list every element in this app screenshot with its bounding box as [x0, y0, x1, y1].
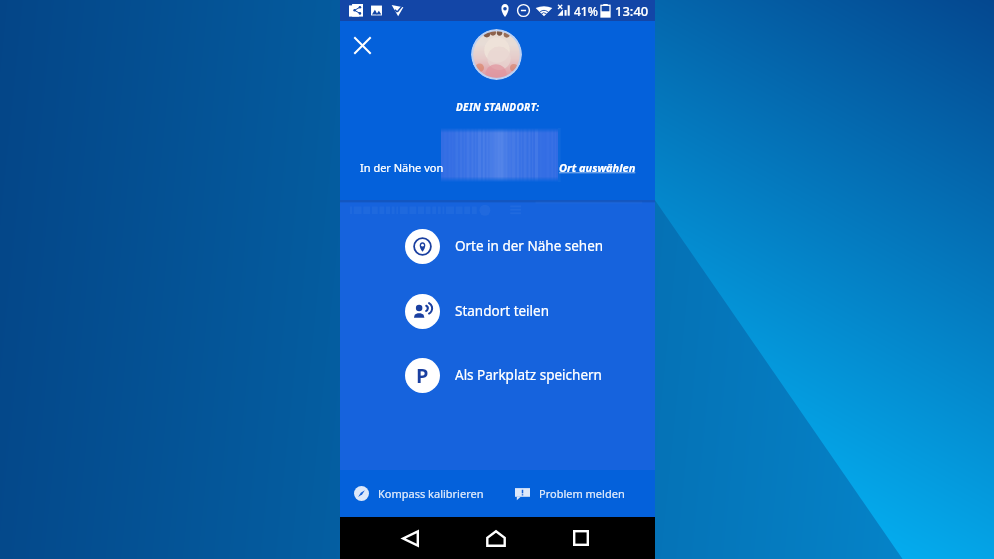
staticText: Orte in der Nähe sehen: [455, 237, 604, 255]
staticText: Kompass kalibrieren: [378, 486, 484, 501]
button[interactable]: Kompass kalibrieren: [354, 480, 484, 507]
staticText: DEIN STANDORT:: [456, 100, 540, 114]
button[interactable]: P: [340, 351, 655, 399]
staticText: Als Parkplatz speichern: [455, 366, 602, 384]
button[interactable]: Startbildschirm: [477, 519, 515, 557]
button[interactable]: Problem melden: [515, 480, 625, 507]
staticText: Problem melden: [539, 486, 625, 501]
staticText: Ort auswählen: [559, 160, 636, 175]
button[interactable]: Schließen: [348, 31, 376, 59]
button[interactable]: Zurück: [391, 519, 429, 557]
button[interactable]: Profil: [471, 29, 522, 80]
button[interactable]: Orte in der Nähe sehen: [340, 222, 655, 270]
staticText: 41%: [574, 3, 598, 19]
staticText: In der Nähe von: [360, 160, 444, 175]
button[interactable]: Übersicht: [562, 519, 600, 557]
button[interactable]: Ort auswählen: [559, 160, 636, 175]
staticText: P: [416, 362, 429, 389]
staticText: Standort teilen: [455, 302, 550, 320]
staticText: 13:40: [615, 2, 649, 20]
button[interactable]: Standort teilen: [340, 287, 655, 335]
